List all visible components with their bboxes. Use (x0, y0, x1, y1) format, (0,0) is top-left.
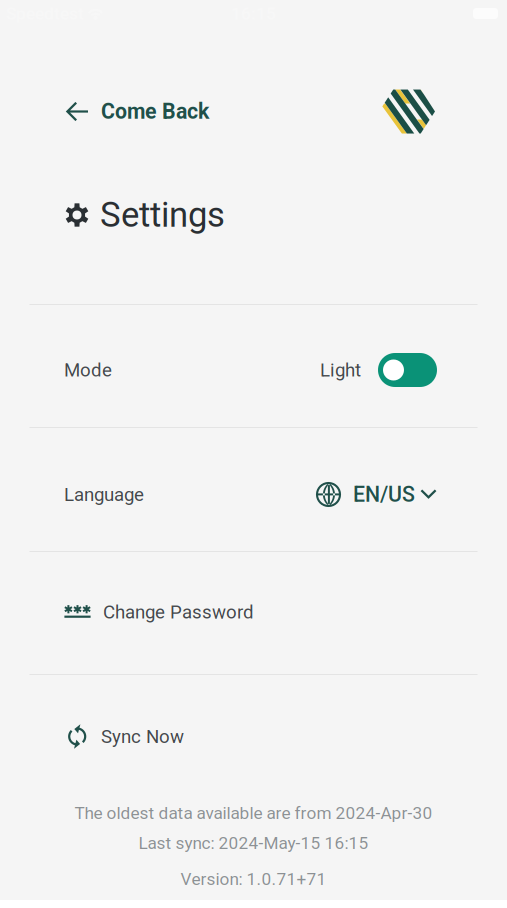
button[interactable]: Come Back (66, 88, 209, 135)
button[interactable]: App logo (379, 89, 435, 133)
staticText: Come Back (101, 99, 209, 124)
staticText: Language (64, 484, 144, 505)
staticText: Change Password (103, 601, 254, 623)
staticText: Sync Now (101, 726, 184, 747)
button[interactable]: Change Password (64, 591, 254, 633)
button[interactable]: Sync Now (67, 715, 184, 758)
staticText: The oldest data available are from 2024-… (74, 803, 432, 823)
staticText: Version: 1.0.71+71 (180, 869, 326, 889)
button[interactable]: Light mode toggle (378, 353, 437, 387)
button[interactable]: EN/US (317, 474, 436, 515)
staticText: Mode (64, 359, 112, 381)
staticText: EN/US (353, 482, 415, 507)
staticText: Last sync: 2024-May-15 16:15 (138, 833, 368, 853)
staticText: Settings (100, 195, 225, 235)
staticText: Light (320, 359, 361, 381)
